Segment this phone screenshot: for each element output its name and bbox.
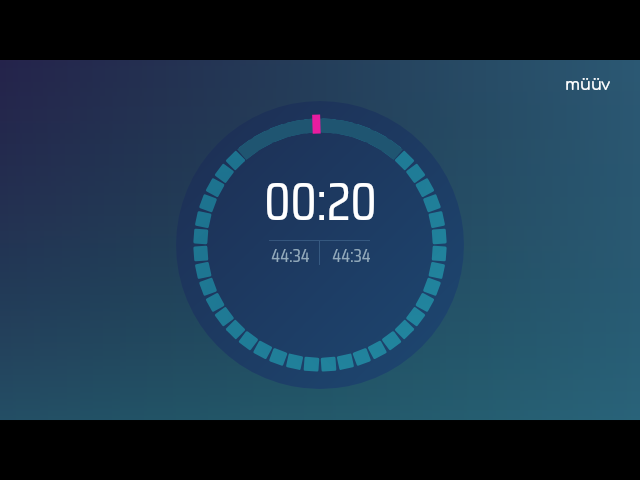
staticText: müüv [565,76,611,94]
staticText: 44:34 [332,240,371,270]
button[interactable]: muuv logo [565,76,611,94]
staticText: 44:34 [271,240,310,270]
staticText: 00:20 [264,159,377,244]
